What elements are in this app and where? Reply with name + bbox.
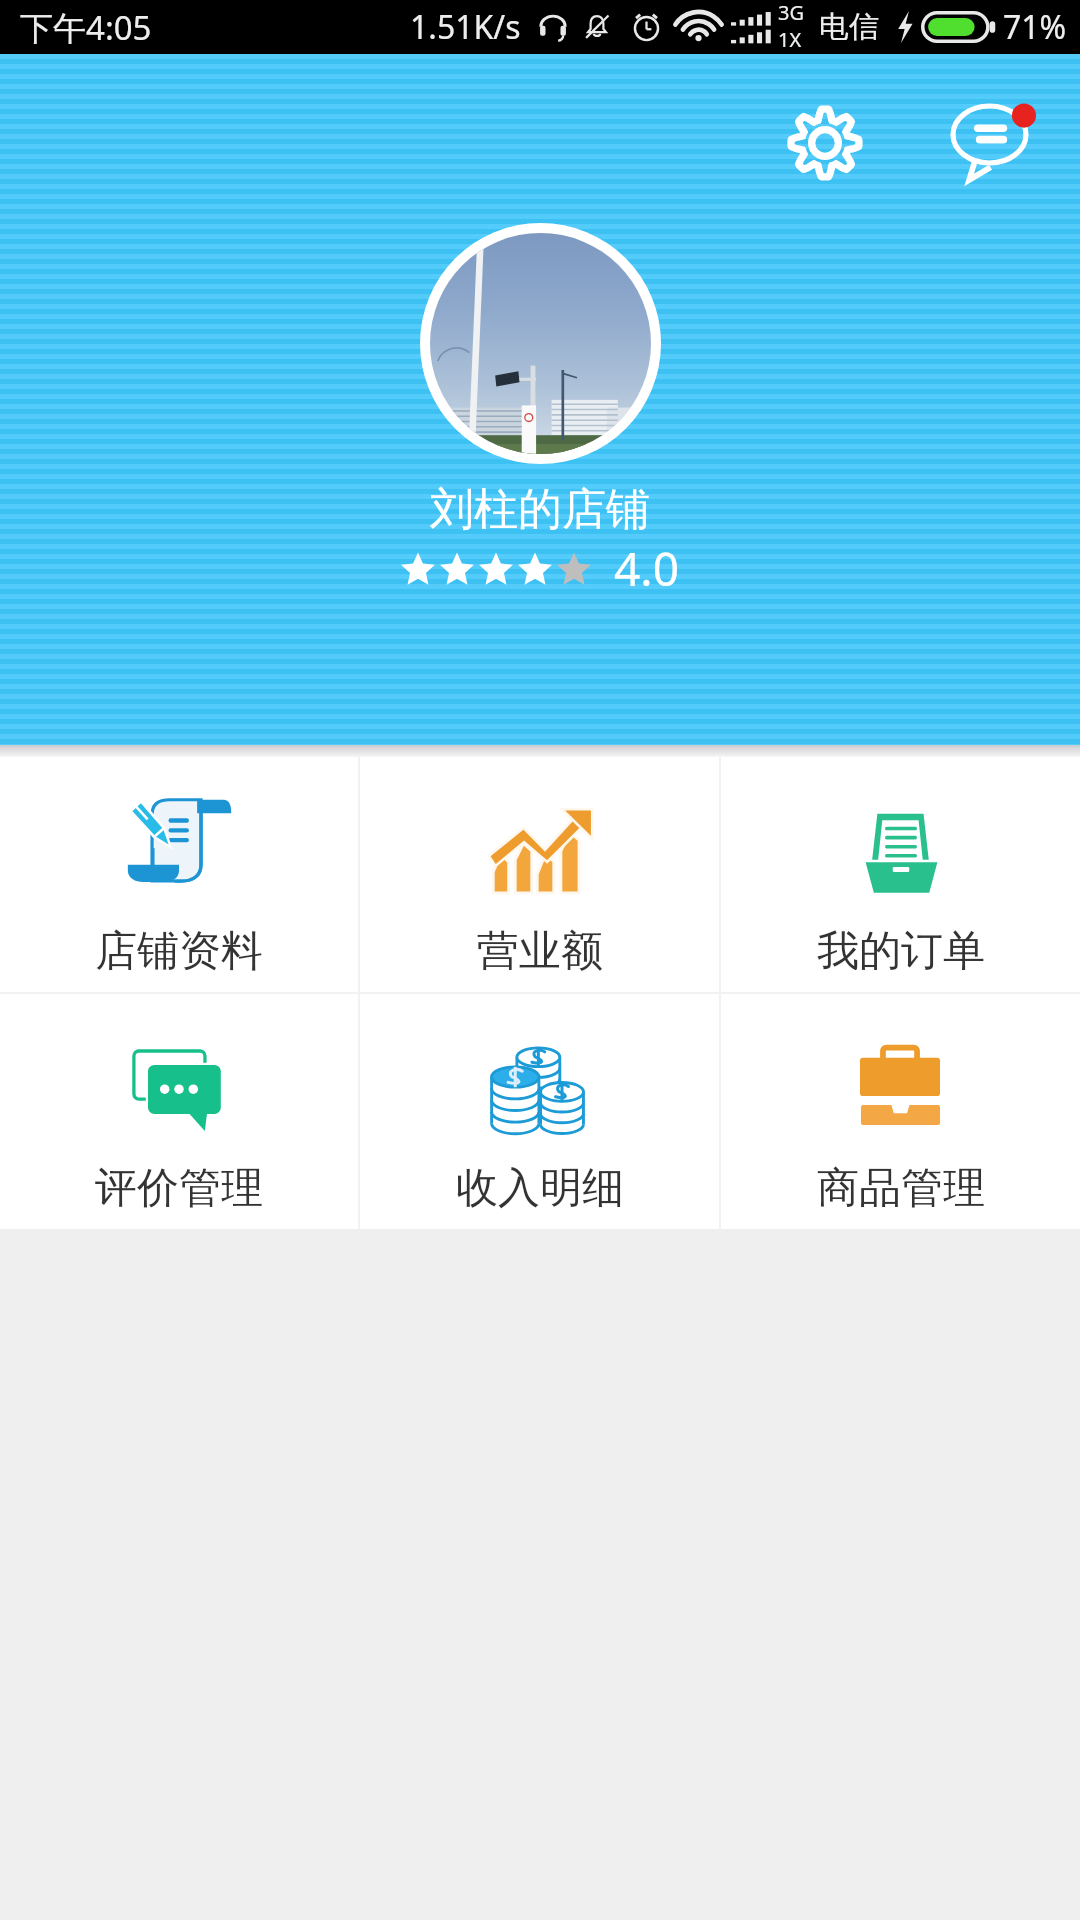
button[interactable]: 评价管理: [0, 994, 358, 1229]
button[interactable]: 商品管理: [721, 994, 1080, 1229]
staticText: 71%: [1003, 5, 1067, 49]
button[interactable]: 我的订单: [721, 757, 1080, 992]
button[interactable]: [420, 223, 661, 464]
staticText: 我的订单: [817, 925, 985, 978]
staticText: 商品管理: [817, 1162, 985, 1215]
button[interactable]: Settings: [770, 88, 880, 198]
staticText: 1X: [778, 26, 802, 53]
staticText: 电信: [819, 8, 879, 46]
button[interactable]: Messages: [930, 88, 1048, 206]
staticText: 评价管理: [95, 1162, 263, 1215]
staticText: 下午4:05: [20, 5, 152, 50]
staticText: 刘柱的店铺: [430, 482, 650, 537]
staticText: 4.0: [614, 537, 679, 600]
button[interactable]: 营业额: [360, 757, 719, 992]
button[interactable]: 店铺资料: [0, 757, 358, 992]
staticText: 营业额: [477, 925, 603, 978]
staticText: 收入明细: [456, 1162, 624, 1215]
button[interactable]: 收入明细: [360, 994, 719, 1229]
staticText: 店铺资料: [95, 925, 263, 978]
staticText: 1.51K/s: [410, 5, 521, 49]
staticText: 3G: [778, 0, 804, 26]
